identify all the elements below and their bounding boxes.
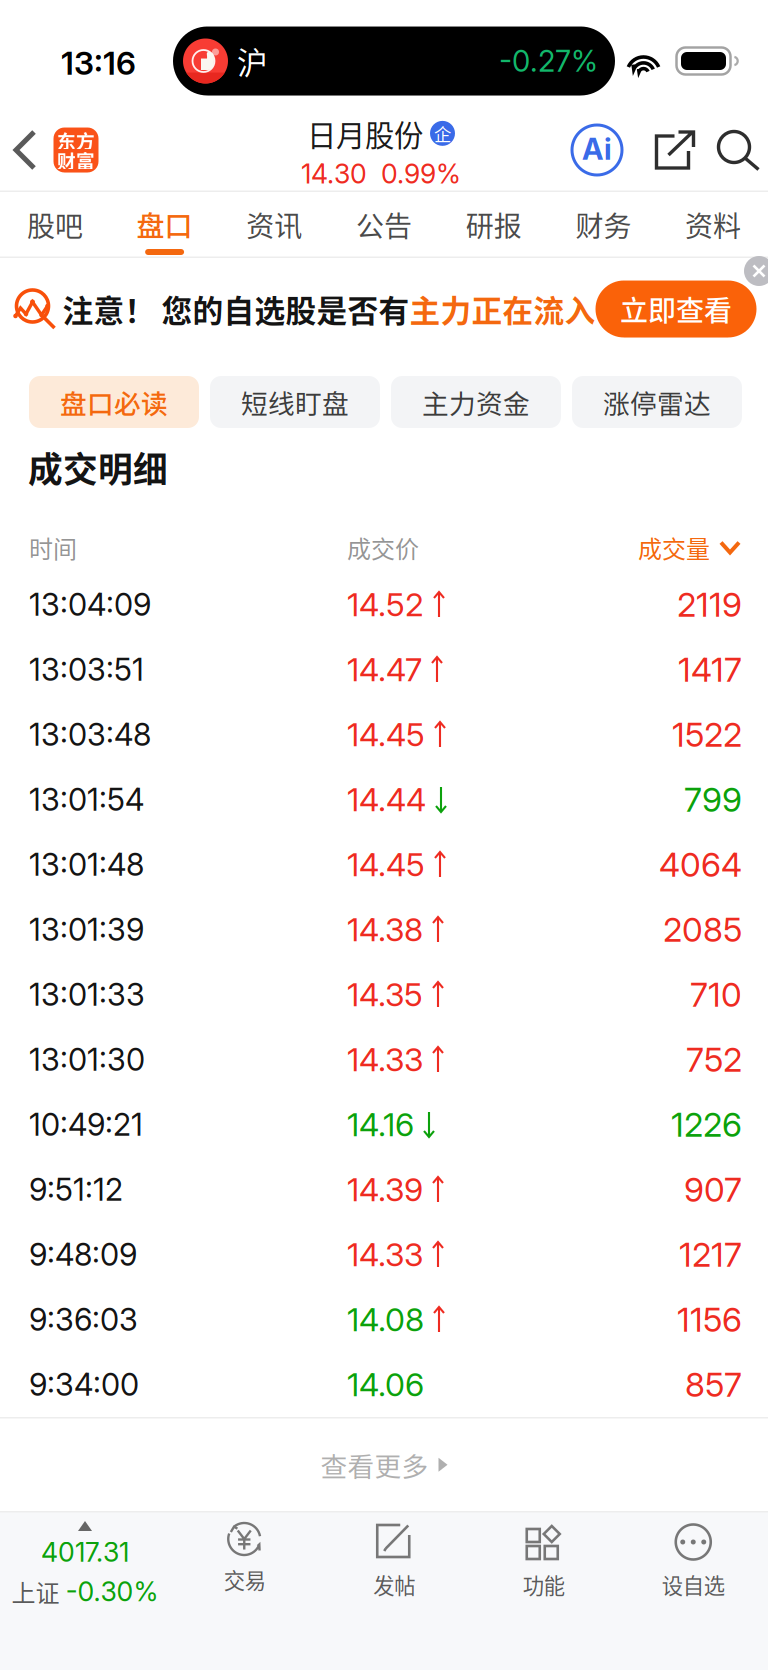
button[interactable]: Share — [640, 108, 710, 192]
staticText: 13:03:51 — [29, 651, 144, 688]
staticText: 发帖 — [373, 1569, 415, 1600]
staticText: 13:01:39 — [29, 911, 144, 948]
staticText: 主力资金 — [422, 383, 530, 421]
staticText: -0.30% — [65, 1575, 158, 1608]
staticText: 股吧 — [27, 204, 83, 245]
staticText: 752 — [686, 1039, 742, 1080]
staticText: 2085 — [663, 909, 742, 950]
staticText: 1522 — [672, 714, 742, 755]
staticText: 1226 — [671, 1104, 742, 1145]
staticText: 14.39 — [347, 1170, 423, 1209]
button[interactable]: 成交量 — [638, 530, 768, 565]
staticText: 富 — [76, 146, 95, 173]
button[interactable]: Close banner — [738, 258, 768, 288]
button[interactable]: 发帖 — [319, 1511, 469, 1670]
staticText: 查看更多 — [320, 1445, 428, 1484]
button[interactable]: 盘口必读 — [29, 376, 199, 428]
button[interactable]: 交易 — [170, 1511, 319, 1670]
button[interactable]: Search — [710, 108, 768, 192]
staticText: 研报 — [466, 204, 522, 245]
button[interactable]: Back — [0, 108, 50, 192]
staticText: 设自选 — [662, 1569, 725, 1600]
staticText: 9:48:09 — [29, 1236, 137, 1273]
button[interactable]: 公告 — [329, 192, 439, 258]
staticText: 14.45 — [347, 715, 425, 754]
staticText: 799 — [684, 779, 742, 820]
staticText: 710 — [690, 974, 742, 1015]
staticText: 13:03:48 — [29, 716, 151, 753]
staticText: 立即查看 — [620, 289, 732, 329]
button[interactable]: 股吧 — [0, 192, 110, 258]
button[interactable]: 财务 — [548, 192, 658, 258]
staticText: 1217 — [679, 1234, 742, 1275]
button[interactable]: 资讯 — [219, 192, 329, 258]
staticText: 短线盯盘 — [241, 383, 349, 421]
staticText: 4064 — [659, 844, 742, 885]
staticText: 14.52 — [347, 585, 424, 624]
button[interactable]: 查看更多 — [0, 1418, 768, 1511]
staticText: 0.99% — [381, 158, 461, 190]
button[interactable]: 短线盯盘 — [210, 376, 380, 428]
staticText: 14.47 — [347, 650, 422, 689]
staticText: 盘口必读 — [60, 383, 168, 421]
button[interactable]: 设自选 — [618, 1511, 768, 1670]
staticText: 14.38 — [347, 910, 423, 949]
staticText: 14.44 — [347, 780, 426, 819]
staticText: 盘口 — [137, 204, 193, 245]
staticText: 13:16 — [61, 44, 136, 82]
staticText: 1156 — [677, 1299, 742, 1340]
staticText: 公告 — [356, 204, 412, 245]
staticText: 沪 — [237, 39, 268, 83]
staticText: 857 — [685, 1364, 742, 1405]
button[interactable]: 4017.31 — [0, 1511, 170, 1670]
staticText: 企 — [434, 121, 451, 146]
staticText: 10:49:21 — [29, 1106, 143, 1143]
staticText: 14.35 — [347, 975, 423, 1014]
staticText: 方 — [76, 126, 95, 153]
staticText: -0.27% — [499, 43, 598, 79]
staticText: 14.30 — [301, 158, 367, 190]
staticText: 成交价 — [347, 530, 419, 565]
staticText: 资讯 — [246, 204, 302, 245]
staticText: 涨停雷达 — [603, 383, 711, 421]
button[interactable]: 涨停雷达 — [572, 376, 742, 428]
button[interactable]: 研报 — [439, 192, 548, 258]
staticText: 4017.31 — [41, 1536, 129, 1568]
staticText: 907 — [684, 1169, 742, 1210]
button[interactable]: AI assistant — [554, 108, 640, 192]
staticText: 14.08 — [347, 1300, 424, 1339]
staticText: 主力正在流入 — [409, 287, 595, 331]
staticText: 财务 — [575, 204, 631, 245]
staticText: 成交量 — [638, 530, 710, 565]
staticText: 14.33 — [347, 1040, 423, 1079]
staticText: 资料 — [685, 204, 741, 245]
staticText: 13:01:33 — [29, 976, 145, 1013]
staticText: 14.45 — [347, 845, 425, 884]
button[interactable]: 盘口 — [110, 192, 219, 258]
button[interactable]: East Money home — [50, 108, 102, 192]
staticText: Ai — [582, 131, 612, 167]
staticText: 14.16 — [347, 1105, 414, 1144]
staticText: 您的自选股是否有 — [161, 287, 409, 331]
staticText: 1417 — [678, 649, 742, 690]
staticText: 交易 — [224, 1564, 266, 1595]
staticText: 9:36:03 — [29, 1301, 138, 1338]
button[interactable]: 功能 — [469, 1511, 618, 1670]
staticText: 东 — [57, 126, 76, 153]
staticText: 13:01:30 — [29, 1041, 145, 1078]
staticText: 13:01:48 — [29, 846, 144, 883]
staticText: 14.06 — [347, 1365, 424, 1404]
staticText: 功能 — [523, 1569, 565, 1600]
button[interactable]: 立即查看 — [595, 280, 756, 337]
staticText: 9:51:12 — [29, 1171, 123, 1208]
button[interactable]: 资料 — [658, 192, 768, 258]
staticText: 成交明细 — [28, 442, 168, 493]
staticText: 14.33 — [347, 1235, 423, 1274]
staticText: 财 — [57, 146, 76, 173]
staticText: 13:01:54 — [29, 781, 144, 818]
staticText: 13:04:09 — [29, 586, 151, 623]
staticText: 9:34:00 — [29, 1366, 139, 1403]
staticText: 2119 — [677, 584, 742, 625]
button[interactable]: 主力资金 — [391, 376, 561, 428]
staticText: 上证 — [11, 1574, 59, 1609]
